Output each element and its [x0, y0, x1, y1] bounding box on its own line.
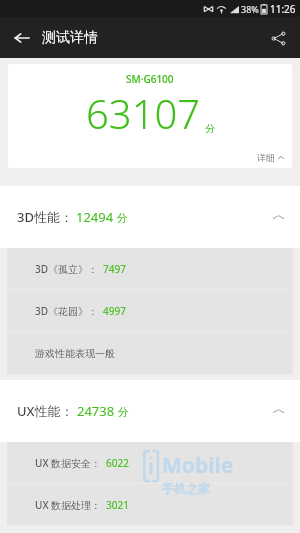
staticText: 12494 — [76, 208, 114, 226]
button[interactable]: 游戏性能表现一般 — [7, 332, 293, 374]
staticText: UX 数据处理： — [35, 498, 102, 512]
button[interactable]: Share — [262, 22, 294, 54]
button[interactable]: 详细 — [257, 152, 285, 163]
staticText: 24738 — [77, 402, 115, 420]
button[interactable]: 3D《孤立》： — [7, 248, 293, 290]
staticText: 4997 — [103, 304, 126, 318]
button[interactable]: UX 数据安全： — [7, 442, 293, 484]
staticText: 手机之家 — [162, 481, 210, 496]
button[interactable]: 3D性能： — [0, 186, 300, 248]
staticText: UX 数据安全： — [35, 456, 102, 470]
staticText: Mobile — [162, 451, 234, 480]
staticText: 分 — [205, 122, 215, 135]
button[interactable]: SM·G6100 — [8, 64, 292, 168]
staticText: 3021 — [106, 498, 129, 512]
staticText: 3D性能： — [17, 208, 73, 226]
staticText: 游戏性能表现一般 — [35, 347, 115, 360]
staticText: 3D《花园》： — [35, 304, 99, 318]
staticText: 6022 — [106, 456, 129, 470]
button[interactable]: UX性能： — [0, 380, 300, 442]
staticText: 7497 — [103, 262, 126, 276]
staticText: 11:26 — [270, 2, 296, 16]
staticText: 分 — [115, 404, 129, 419]
staticText: 详细 — [257, 152, 275, 163]
staticText: 3D《孤立》： — [35, 262, 99, 276]
button[interactable]: 3D《花园》： — [7, 290, 293, 332]
button[interactable]: Back — [6, 22, 38, 54]
staticText: 38% — [241, 3, 259, 15]
staticText: 测试详情 — [42, 29, 98, 47]
staticText: UX性能： — [17, 402, 74, 420]
staticText: 分 — [114, 210, 128, 225]
button[interactable]: UX 数据处理： — [7, 484, 293, 526]
staticText: 63107 — [86, 86, 201, 140]
staticText: SM·G6100 — [126, 72, 174, 86]
